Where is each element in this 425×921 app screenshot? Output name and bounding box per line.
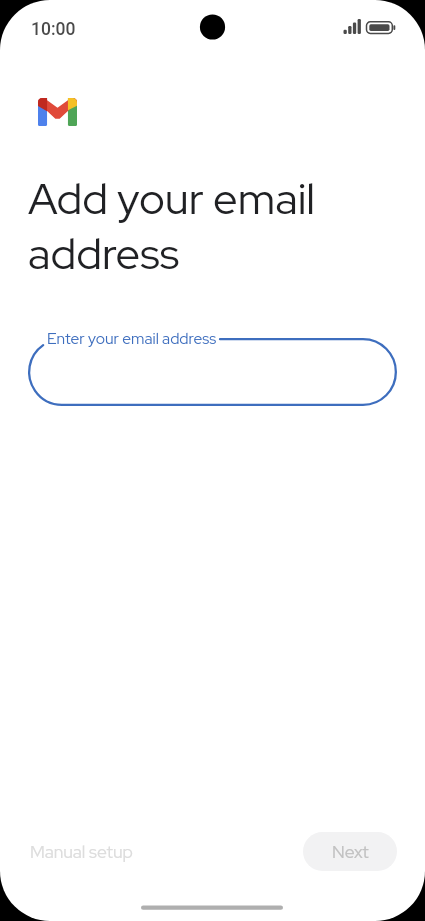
button[interactable]: Next bbox=[303, 832, 397, 871]
staticText: 10:00 bbox=[31, 19, 76, 40]
staticText: Enter your email address bbox=[47, 328, 217, 349]
button[interactable]: Enter your email address bbox=[28, 338, 397, 406]
staticText: Manual setup bbox=[30, 840, 133, 863]
button[interactable]: Manual setup bbox=[18, 832, 144, 871]
staticText: Add your email address bbox=[28, 170, 316, 282]
staticText: Next bbox=[332, 840, 369, 863]
